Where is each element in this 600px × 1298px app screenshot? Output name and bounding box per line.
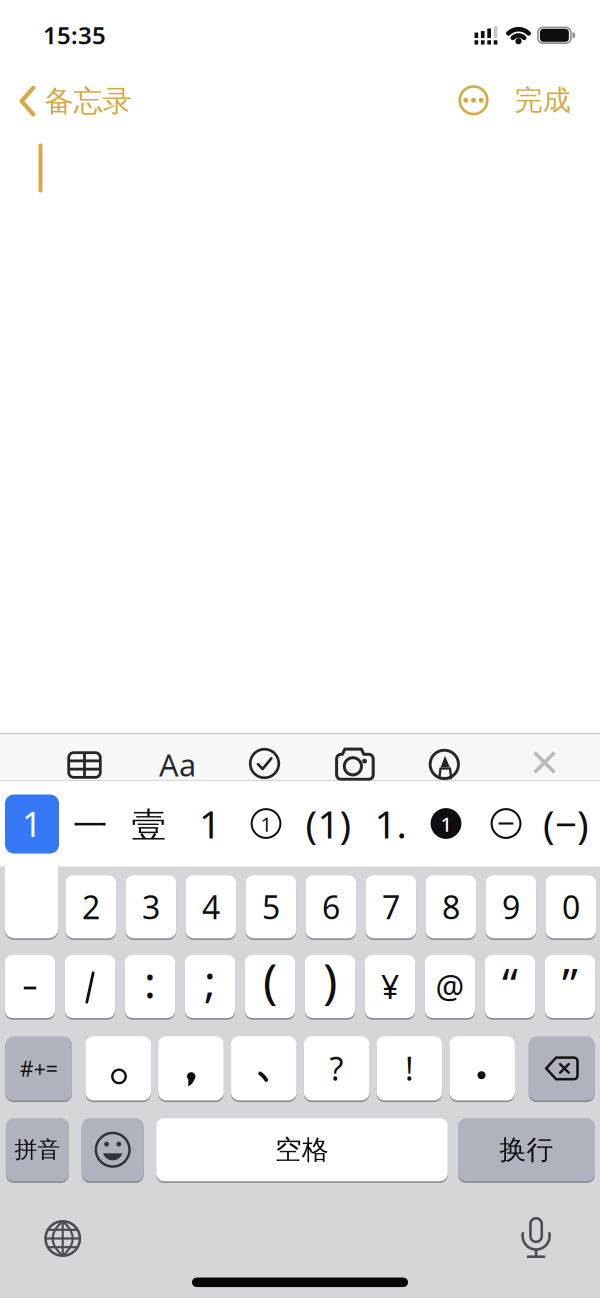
staticText: ( <box>263 948 277 1012</box>
button[interactable]: 4 <box>186 873 236 940</box>
staticText: ” <box>562 954 578 1012</box>
button[interactable]: ) <box>305 953 355 1020</box>
staticText: 1 <box>22 800 42 846</box>
staticText: 拼音 <box>14 1136 60 1164</box>
button[interactable]: 听写 <box>523 1217 549 1258</box>
staticText: 备忘录 <box>44 83 131 119</box>
button[interactable]: 。 <box>85 1034 151 1102</box>
button[interactable]: ? <box>304 1034 369 1102</box>
staticText: (1) <box>305 798 351 849</box>
button[interactable]: 1 <box>5 794 59 853</box>
staticText: 3 <box>142 886 160 928</box>
staticText: ; <box>204 951 216 1010</box>
staticText: 4 <box>202 886 220 928</box>
staticText: 6 <box>322 886 340 928</box>
staticText: 一 <box>73 805 108 847</box>
staticText: 换行 <box>499 1133 553 1166</box>
button[interactable]: 空格 <box>156 1116 448 1183</box>
staticText: ) <box>323 948 337 1012</box>
button[interactable]: 1 <box>199 798 221 849</box>
staticText: 7 <box>382 886 400 928</box>
staticText: ? <box>330 1047 344 1090</box>
button[interactable]: / <box>65 953 115 1020</box>
button[interactable]: ⊖ <box>490 807 522 839</box>
button[interactable]: 2 <box>66 873 116 940</box>
button[interactable]: ， <box>158 1034 224 1102</box>
button[interactable]: 壹 <box>131 803 166 845</box>
button[interactable]: 下一个输入法 <box>44 1220 81 1257</box>
staticText: ! <box>405 1047 414 1090</box>
staticText: 5 <box>262 886 280 928</box>
staticText: 15:35 <box>43 19 106 51</box>
button[interactable]: 5 <box>246 873 296 940</box>
button[interactable]: 表情 <box>82 1116 144 1183</box>
button[interactable]: 1 <box>4 855 58 938</box>
button[interactable]: ! <box>377 1034 442 1102</box>
button[interactable]: @ <box>425 953 475 1020</box>
button[interactable]: ; <box>185 953 235 1020</box>
button[interactable]: 一 <box>73 802 108 845</box>
button[interactable]: 、 <box>231 1034 297 1102</box>
button[interactable]: 完成 <box>515 83 571 118</box>
button[interactable]: 相机 <box>335 747 375 781</box>
staticText: #+= <box>20 1054 58 1082</box>
button[interactable]: ❶ <box>430 807 462 839</box>
staticText: “ <box>502 954 518 1012</box>
staticText: 空格 <box>275 1133 329 1166</box>
button[interactable]: “ <box>485 953 535 1020</box>
button[interactable]: (−) <box>543 798 589 849</box>
button[interactable]: 更多 <box>458 85 488 115</box>
button[interactable]: . <box>449 1034 515 1102</box>
button[interactable]: 表格 <box>67 751 102 779</box>
button[interactable]: 核对清单 <box>249 748 280 779</box>
button[interactable]: 删除 <box>529 1034 595 1102</box>
button[interactable]: ( <box>245 953 295 1020</box>
button[interactable]: 8 <box>426 873 476 940</box>
button[interactable]: : <box>125 953 175 1020</box>
button[interactable]: 1. <box>374 798 406 849</box>
staticText: 1 <box>199 798 221 849</box>
staticText: 9 <box>502 886 520 928</box>
button[interactable]: (1) <box>305 798 351 849</box>
button[interactable]: 备忘录 <box>19 83 131 119</box>
staticText: @ <box>435 965 464 1008</box>
staticText: (−) <box>543 798 589 849</box>
staticText: 0 <box>562 886 580 928</box>
button[interactable]: ① <box>250 807 282 839</box>
staticText: 2 <box>82 886 100 928</box>
button[interactable]: 格式 <box>159 744 196 785</box>
staticText: ¥ <box>381 965 399 1008</box>
button[interactable]: 换行 <box>458 1116 595 1183</box>
staticText: 壹 <box>131 804 166 847</box>
staticText: 1. <box>374 798 406 849</box>
button[interactable]: 拼音 <box>6 1116 69 1183</box>
staticText: 8 <box>442 886 460 928</box>
staticText: : <box>144 952 156 1011</box>
button[interactable]: 3 <box>126 873 176 940</box>
button[interactable]: 7 <box>366 873 416 940</box>
button[interactable]: 关闭 <box>533 751 556 774</box>
button[interactable]: 标记 <box>429 749 460 780</box>
staticText: 1 <box>440 811 451 837</box>
button[interactable]: - <box>5 953 55 1020</box>
button[interactable]: ” <box>545 953 595 1020</box>
staticText: 1 <box>260 811 271 837</box>
button[interactable]: 9 <box>486 873 536 940</box>
staticText: Aa <box>159 744 196 785</box>
staticText: 完成 <box>515 83 571 118</box>
button[interactable]: #+= <box>5 1034 72 1102</box>
button[interactable]: ¥ <box>365 953 415 1020</box>
button[interactable]: 0 <box>546 873 596 940</box>
button[interactable]: 6 <box>306 873 356 940</box>
